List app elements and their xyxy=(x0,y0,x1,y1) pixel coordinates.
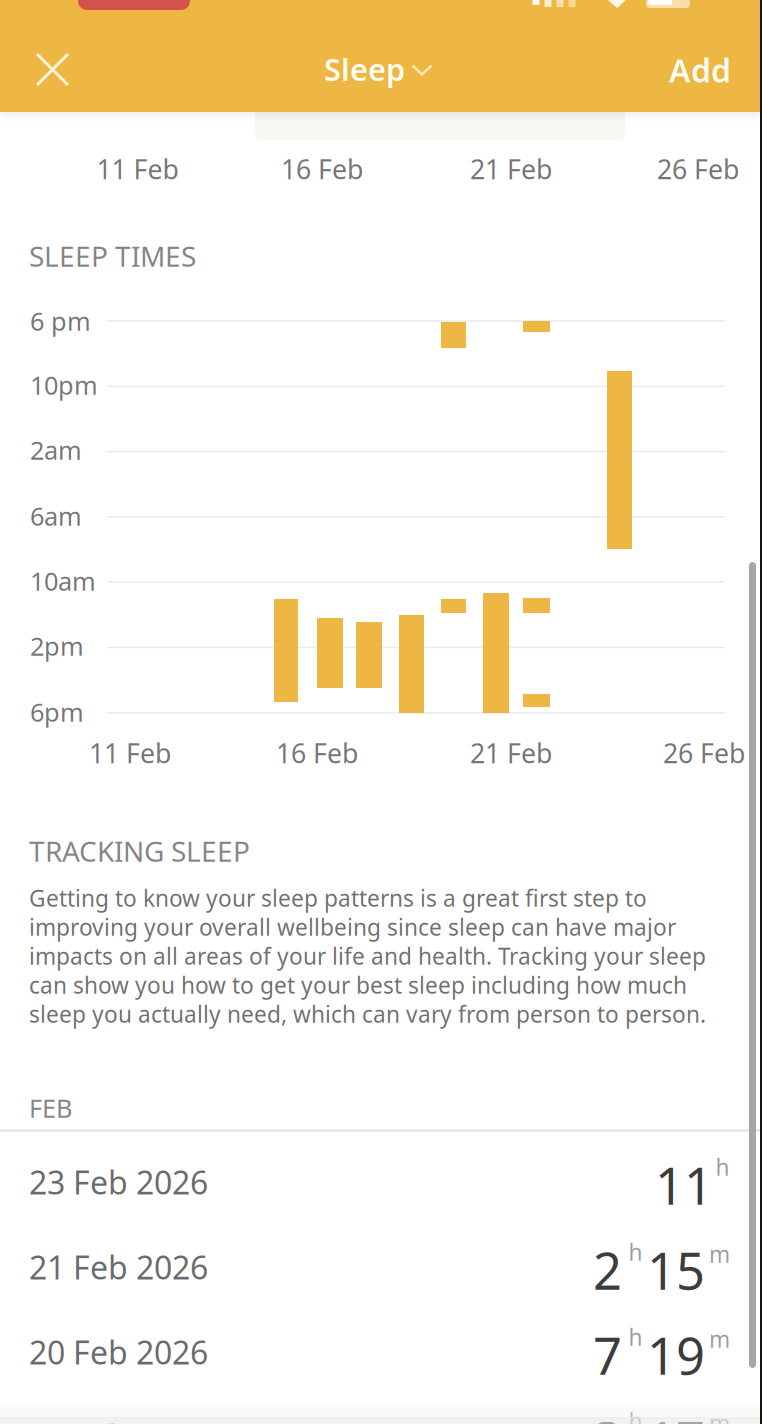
staticText: 15 xyxy=(647,1236,705,1304)
staticText: 10am xyxy=(30,564,96,598)
staticText: impacts on all areas of your life and he… xyxy=(29,941,706,971)
button[interactable]: 20 Feb 2026 xyxy=(0,1311,762,1395)
staticText: m xyxy=(709,1239,730,1269)
staticText: m xyxy=(709,1408,730,1424)
staticText: 26 Feb xyxy=(663,735,745,771)
staticText: 11 Feb xyxy=(89,735,171,771)
button[interactable]: Add xyxy=(641,40,731,100)
staticText: 17 xyxy=(647,1405,705,1424)
staticText: 26 Feb xyxy=(657,151,739,187)
staticText: 19 Feb 2026 xyxy=(29,1415,208,1424)
staticText: TRACKING SLEEP xyxy=(29,832,250,870)
button[interactable] xyxy=(29,46,76,93)
staticText: 6pm xyxy=(30,695,84,729)
staticText: Add xyxy=(669,49,731,91)
button[interactable]: Sleep xyxy=(304,39,434,101)
staticText: SLEEP TIMES xyxy=(29,237,196,275)
staticText: h xyxy=(628,1237,642,1267)
staticText: can show you how to get your best sleep … xyxy=(29,970,687,1000)
staticText: improving your overall wellbeing since s… xyxy=(29,912,676,942)
staticText: 2pm xyxy=(30,629,84,663)
staticText: 21 Feb 2026 xyxy=(29,1246,208,1288)
staticText: 21 Feb xyxy=(470,151,552,187)
staticText: 11 xyxy=(655,1151,713,1219)
staticText: FEB xyxy=(29,1091,72,1125)
staticText: Sleep xyxy=(324,49,405,89)
staticText: h xyxy=(628,1322,642,1352)
staticText: 23 Feb 2026 xyxy=(29,1161,208,1203)
staticText: 6am xyxy=(30,499,82,533)
staticText: 6 pm xyxy=(30,304,91,338)
staticText: h xyxy=(715,1152,729,1182)
staticText: 20 Feb 2026 xyxy=(29,1331,208,1373)
staticText: 19 xyxy=(647,1321,705,1389)
staticText: h xyxy=(628,1406,642,1424)
staticText: Getting to know your sleep patterns is a… xyxy=(29,883,647,913)
staticText: 2am xyxy=(30,433,82,467)
staticText: 16 Feb xyxy=(276,735,358,771)
staticText: 21 Feb xyxy=(470,735,552,771)
staticText: 10pm xyxy=(30,368,98,402)
button[interactable]: 21 Feb 2026 xyxy=(0,1226,762,1310)
staticText: 11 Feb xyxy=(96,151,178,187)
button[interactable]: 23 Feb 2026 xyxy=(0,1141,762,1225)
button[interactable]: 19 Feb 2026 xyxy=(0,1395,762,1424)
staticText: 16 Feb xyxy=(281,151,363,187)
staticText: 7 xyxy=(593,1321,622,1389)
staticText: sleep you actually need, which can vary … xyxy=(29,999,706,1029)
staticText: 2 xyxy=(593,1236,622,1304)
staticText: 2 xyxy=(593,1405,622,1424)
staticText: m xyxy=(709,1324,730,1354)
